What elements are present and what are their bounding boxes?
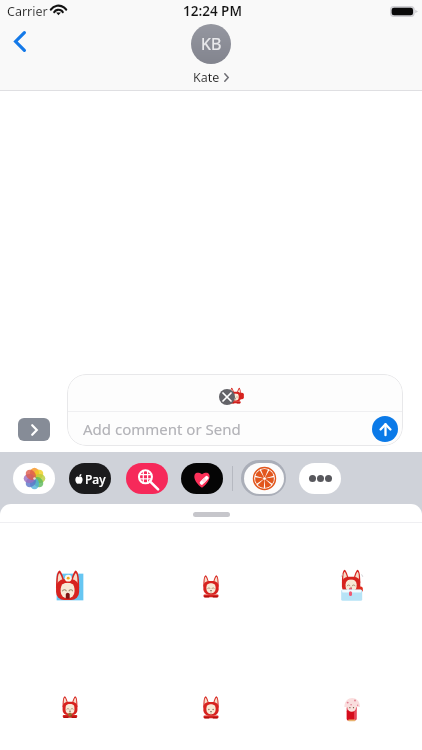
button[interactable]: KB [183, 24, 239, 86]
staticText: 12:24 PM [183, 2, 242, 20]
button[interactable]: Remove sticker [219, 389, 235, 405]
button[interactable]: Sticker 1 [24, 547, 116, 627]
staticText: Add comment or Send [83, 419, 241, 439]
button[interactable]: Send [372, 416, 398, 442]
staticText: KB [201, 33, 222, 55]
button[interactable]: Sticker 5 [165, 668, 257, 748]
staticText: Pay [85, 471, 106, 487]
button[interactable]: Back [2, 23, 38, 59]
button[interactable]: Sticker 3 [306, 547, 398, 627]
button[interactable]: Sticker 6 [306, 668, 398, 748]
button[interactable]: Fox stickers [241, 460, 286, 496]
button[interactable]: Show apps [18, 418, 50, 441]
button[interactable]: Photos [13, 463, 55, 494]
button[interactable]: Sticker 2 [165, 547, 257, 627]
staticText: Carrier [7, 3, 48, 20]
staticText: Kate [193, 69, 220, 86]
button[interactable]: Apple Pay [69, 463, 111, 494]
button[interactable]: Image search [126, 463, 168, 494]
button[interactable]: More apps [299, 463, 341, 494]
button[interactable]: Sticker 4 [24, 668, 116, 748]
button[interactable]: Store [181, 463, 223, 494]
